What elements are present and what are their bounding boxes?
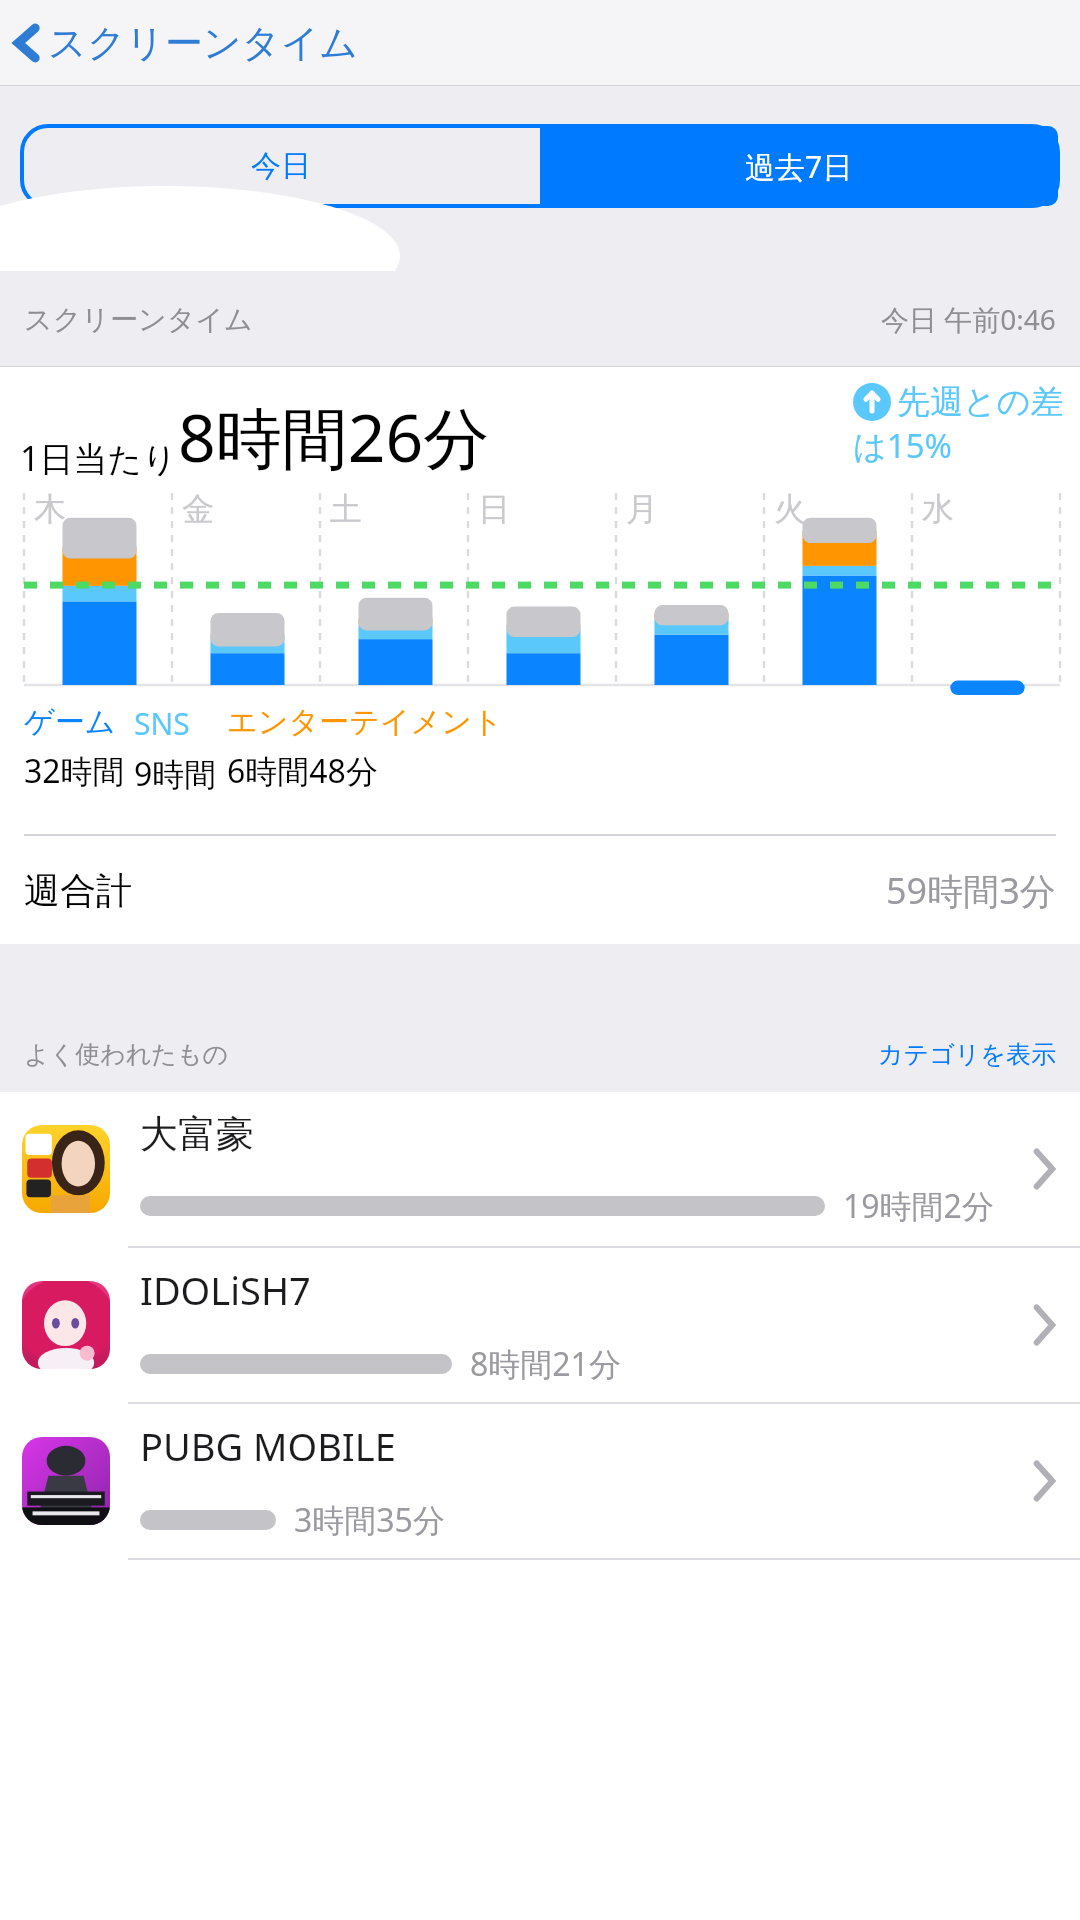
button[interactable]: IDOLiSH7	[0, 1248, 1080, 1402]
staticText: 3時間35分	[294, 1498, 445, 1542]
staticText: 金	[182, 489, 214, 529]
staticText: カテゴリを表示	[878, 1039, 1056, 1070]
button[interactable]: 過去7日	[540, 126, 1058, 206]
staticText: 過去7日	[745, 146, 853, 187]
staticText: スクリーンタイム	[48, 19, 359, 67]
staticText: 9時間34分	[134, 752, 227, 796]
staticText: エンターテイメント	[227, 703, 503, 741]
staticText: 先週との差	[897, 381, 1064, 423]
staticText: 今日	[251, 147, 311, 185]
staticText: 週合計	[24, 868, 132, 913]
staticText: 木	[34, 489, 66, 529]
button[interactable]: PUBG MOBILE	[0, 1404, 1080, 1558]
staticText: 59時間3分	[886, 866, 1056, 915]
button[interactable]: カテゴリを表示	[878, 1039, 1056, 1070]
staticText: 8時間26分	[178, 391, 490, 481]
staticText: 8時間21分	[470, 1342, 621, 1386]
other: 詳細	[1032, 1146, 1058, 1192]
staticText: 1日当たり	[20, 435, 178, 481]
staticText: ゲーム	[24, 703, 116, 741]
staticText: PUBG MOBILE	[140, 1420, 396, 1472]
button[interactable]: 戻る	[10, 19, 359, 67]
staticText: 今日 午前0:46	[881, 300, 1056, 338]
staticText: 日	[478, 489, 510, 529]
staticText: IDOLiSH7	[140, 1264, 311, 1316]
other: 詳細	[1032, 1302, 1058, 1348]
staticText: 土	[330, 489, 362, 529]
button[interactable]: 大富豪	[0, 1092, 1080, 1246]
other: 詳細	[1032, 1458, 1058, 1504]
staticText: は15%	[853, 423, 952, 468]
button[interactable]: 今日	[22, 126, 540, 206]
staticText: スクリーンタイム	[24, 302, 253, 337]
staticText: よく使われたもの	[24, 1039, 229, 1070]
staticText: 月	[626, 489, 658, 529]
staticText: 火	[774, 489, 806, 529]
staticText: 19時間2分	[843, 1184, 994, 1228]
staticText: SNS	[134, 703, 190, 744]
staticText: 水	[922, 489, 954, 529]
staticText: 32時間31分	[24, 749, 134, 793]
staticText: 大富豪	[140, 1110, 254, 1158]
staticText: 6時間48分	[227, 749, 378, 793]
